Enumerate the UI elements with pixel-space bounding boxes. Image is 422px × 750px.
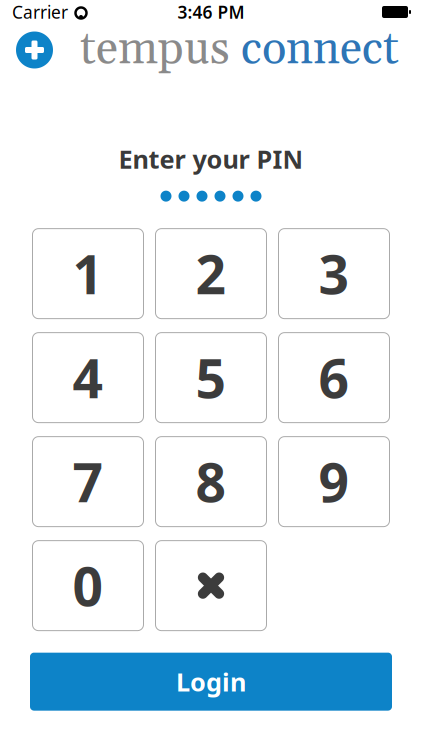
button[interactable]: 0 [32,541,143,631]
button[interactable]: 5 [155,333,266,423]
button[interactable]: 3 [278,229,389,319]
button[interactable]: 4 [32,333,143,423]
staticText: 9 [318,446,349,517]
button[interactable]: 9 [278,437,389,527]
staticText: 1 [72,238,103,309]
staticText: Enter your PIN [118,142,303,176]
button[interactable]: 2 [155,229,266,319]
staticText: Carrier [12,0,68,23]
staticText: 3 [318,238,349,309]
staticText: 5 [195,342,226,413]
button[interactable]: Delete [155,541,266,631]
staticText: 3:46 PM [177,0,244,23]
staticText: connect [230,21,399,79]
button[interactable]: Login [30,653,392,711]
button[interactable]: 1 [32,229,143,319]
staticText: 0 [72,550,103,621]
staticText: 7 [72,446,103,517]
staticText: tempus [80,21,230,79]
staticText: Login [176,665,246,698]
button[interactable]: 8 [155,437,266,527]
staticText: 2 [195,238,226,309]
staticText: 8 [195,446,226,517]
staticText: 6 [318,342,349,413]
staticText: 4 [72,342,103,413]
button[interactable]: 6 [278,333,389,423]
button[interactable]: 7 [32,437,143,527]
